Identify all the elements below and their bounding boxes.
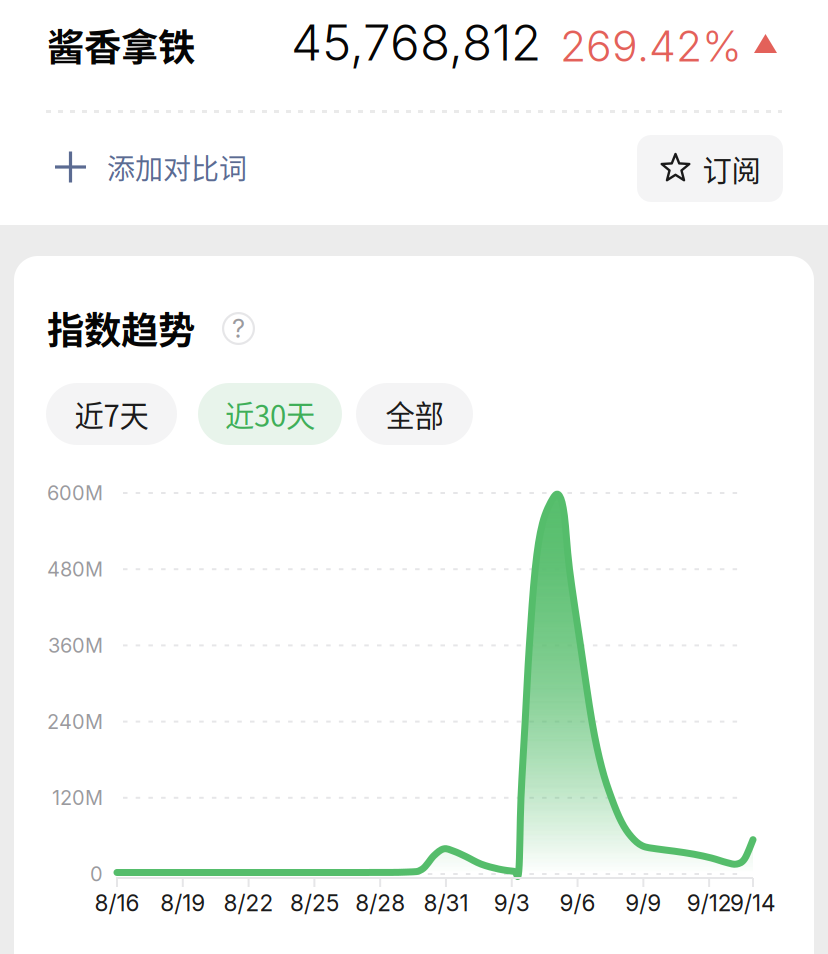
staticText: ? — [232, 313, 245, 344]
staticText: 480M — [47, 557, 103, 581]
staticText: 添加对比词 — [107, 147, 247, 187]
staticText: 45,768,812 — [291, 13, 541, 72]
staticText: 指数趋势 — [47, 301, 195, 355]
staticText: 9/3 — [494, 889, 530, 917]
staticText: 近30天 — [225, 393, 315, 435]
staticText: 9/9 — [625, 889, 661, 917]
staticText: 订阅 — [702, 147, 760, 190]
staticText: 全部 — [385, 393, 443, 435]
staticText: 8/31 — [423, 889, 468, 917]
button[interactable]: 近7天 — [46, 383, 177, 445]
staticText: 269.42% — [560, 20, 742, 72]
staticText: 600M — [47, 481, 103, 505]
button[interactable]: 全部 — [356, 383, 473, 445]
button[interactable]: 近30天 — [198, 383, 342, 445]
staticText: 120M — [52, 786, 103, 810]
staticText: 8/19 — [160, 889, 205, 917]
staticText: 9/6 — [560, 889, 596, 917]
staticText: 360M — [48, 633, 103, 657]
button[interactable]: 订阅 — [637, 135, 783, 202]
staticText: 近7天 — [74, 393, 148, 435]
staticText: 8/16 — [94, 889, 139, 917]
staticText: 8/25 — [290, 889, 339, 917]
staticText: 8/28 — [355, 889, 405, 917]
staticText: 9/12 — [687, 889, 732, 917]
staticText: 0 — [90, 862, 103, 886]
staticText: 酱香拿铁 — [47, 18, 195, 72]
staticText: 8/22 — [224, 889, 274, 917]
button[interactable]: 添加对比词 — [54, 128, 304, 206]
button[interactable]: Help — [222, 312, 255, 345]
staticText: 9/14 — [730, 889, 776, 917]
staticText: 240M — [47, 709, 103, 734]
